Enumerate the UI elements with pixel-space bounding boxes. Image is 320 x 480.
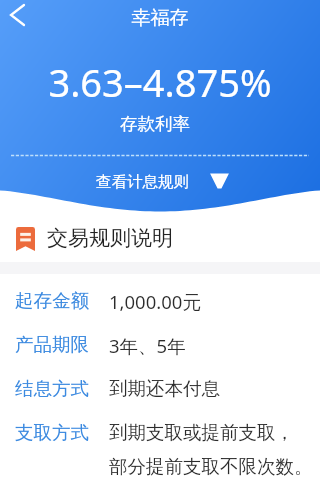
staticText: 结息方式 [15, 377, 109, 400]
staticText: 存款利率 [0, 113, 315, 135]
button[interactable]: Expand interest rules [209, 173, 230, 191]
staticText: 支取方式 [15, 421, 109, 444]
staticText: 3.63–4.875% [0, 56, 320, 108]
staticText: 部分提前支取不限次数。 [109, 455, 313, 478]
button[interactable]: 结息方式 [0, 377, 320, 400]
staticText: 到期还本付息 [109, 377, 220, 400]
staticText: 查看计息规则 [96, 172, 189, 192]
staticText: 3年、5年 [109, 333, 186, 358]
button[interactable]: 查看计息规则 [93, 170, 191, 194]
button[interactable]: 支取方式 [0, 421, 320, 478]
button[interactable]: Back [0, 0, 38, 32]
staticText: 产品期限 [15, 333, 109, 356]
staticText: 起存金额 [15, 289, 109, 312]
staticText: 交易规则说明 [47, 225, 173, 251]
button[interactable]: 产品期限 [0, 333, 320, 358]
staticText: 到期支取或提前支取， [109, 421, 294, 444]
staticText: 幸福存 [0, 6, 320, 30]
staticText: 1,000.00元 [109, 289, 201, 314]
button[interactable]: 起存金额 [0, 289, 320, 314]
